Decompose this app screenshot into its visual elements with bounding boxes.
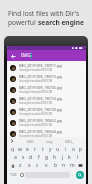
button[interactable]: n <box>60 162 67 169</box>
staticText: IMG_20191005_190644.jpg <box>19 129 62 134</box>
staticText: m <box>70 162 75 169</box>
staticText: IMG_20191005_190745.jpg <box>19 85 62 90</box>
staticText: IMG_20191005_190730.jpg <box>19 107 62 112</box>
button[interactable]: IMG_20191005_190644.jpg <box>7 128 86 139</box>
button[interactable]: Back <box>7 50 86 61</box>
staticText: w <box>18 146 22 153</box>
staticText: /storage/emulated/0/DCIM <box>19 101 52 105</box>
button[interactable]: ?123 <box>9 171 18 178</box>
staticText: Find lost files with Dir's <box>8 9 80 18</box>
staticText: /storage/emulated/0/DCIM <box>19 112 52 116</box>
button[interactable]: IMG_20191005_190745.jpg <box>7 84 86 95</box>
staticText: . <box>72 172 74 177</box>
button[interactable]: l <box>74 154 81 161</box>
staticText: /storage/emulated/0/DCIM <box>19 79 52 83</box>
staticText: y <box>49 146 52 153</box>
staticText: o <box>72 146 76 153</box>
button[interactable]: a <box>12 154 19 161</box>
button[interactable]: h <box>51 154 58 161</box>
staticText: b <box>54 162 58 169</box>
button[interactable]: Emoji <box>18 171 25 178</box>
button[interactable]: g <box>43 154 50 161</box>
staticText: i <box>65 146 67 153</box>
button[interactable]: f <box>35 154 42 161</box>
staticText: ?123 <box>10 173 17 177</box>
staticText: l <box>77 154 79 161</box>
staticText: /storage/emulated/0/DCIM <box>19 123 52 127</box>
staticText: h <box>53 154 57 161</box>
staticText: IMG <box>27 139 34 144</box>
staticText: IMG_ <box>65 139 74 144</box>
staticText: f <box>38 154 40 161</box>
staticText: IMG_20191005_190652.jpg <box>19 118 62 123</box>
staticText: a <box>14 154 17 161</box>
staticText: g <box>45 154 49 161</box>
button[interactable]: v <box>43 162 50 169</box>
button[interactable]: p <box>77 146 84 153</box>
staticText: /storage/emulated/0/DCIM <box>19 134 52 138</box>
button[interactable]: Search <box>76 171 84 179</box>
button[interactable]: d <box>27 154 34 161</box>
staticText: s <box>22 154 25 161</box>
button[interactable]: t <box>39 146 46 153</box>
staticText: j <box>62 154 64 161</box>
button[interactable]: u <box>54 146 61 153</box>
staticText: x <box>28 162 31 169</box>
staticText: e <box>26 146 29 153</box>
staticText: search engine <box>38 18 84 27</box>
button[interactable]: IMG_20191005_190911.jpg <box>7 62 86 73</box>
button[interactable]: Back <box>9 52 17 60</box>
staticText: c <box>36 162 39 169</box>
button[interactable]: b <box>52 162 59 169</box>
button[interactable]: y <box>47 146 54 153</box>
button[interactable]: m <box>69 162 76 169</box>
staticText: t <box>42 146 44 153</box>
staticText: d <box>29 154 33 161</box>
staticText: IMG_20191005_190733.jpg <box>19 96 62 101</box>
button[interactable]: k <box>66 154 73 161</box>
staticText: v <box>45 162 48 169</box>
button[interactable]: o <box>70 146 77 153</box>
staticText: /storage/emulated/0/DCIM <box>19 90 52 94</box>
staticText: p <box>79 146 83 153</box>
button[interactable]: i <box>62 146 69 153</box>
staticText: n <box>62 162 66 169</box>
button[interactable]: q <box>9 146 16 153</box>
button[interactable]: z <box>17 162 24 169</box>
button[interactable]: . <box>70 172 75 177</box>
staticText: q <box>11 146 15 153</box>
button[interactable]: s <box>20 154 27 161</box>
button[interactable]: x <box>26 162 33 169</box>
staticText: IMG <box>21 52 31 59</box>
button[interactable]: IMG_20191005_190652.jpg <box>7 117 86 128</box>
button[interactable]: Backspace <box>77 162 84 169</box>
staticText: /storage/emulated/0/DCIM <box>19 68 52 72</box>
button[interactable]: w <box>16 146 23 153</box>
button[interactable]: Shift <box>9 162 16 169</box>
staticText: u <box>56 146 60 153</box>
staticText: img <box>46 139 53 144</box>
staticText: r <box>34 146 37 153</box>
button[interactable]: e <box>24 146 31 153</box>
button[interactable]: IMG_20191005_190912.jpg <box>7 73 86 84</box>
staticText: k <box>68 154 71 161</box>
button[interactable]: IMG_20191005_190730.jpg <box>7 106 86 117</box>
button[interactable]: c <box>34 162 41 169</box>
staticText: z <box>19 162 22 169</box>
button[interactable]: r <box>32 146 39 153</box>
staticText: IMG_20191005_190911.jpg <box>19 63 62 68</box>
button[interactable]: j <box>59 154 66 161</box>
button[interactable]: IMG_20191005_190733.jpg <box>7 95 86 106</box>
staticText: IMG_20191005_190912.jpg <box>19 74 62 79</box>
staticText: powerful <box>8 18 38 27</box>
